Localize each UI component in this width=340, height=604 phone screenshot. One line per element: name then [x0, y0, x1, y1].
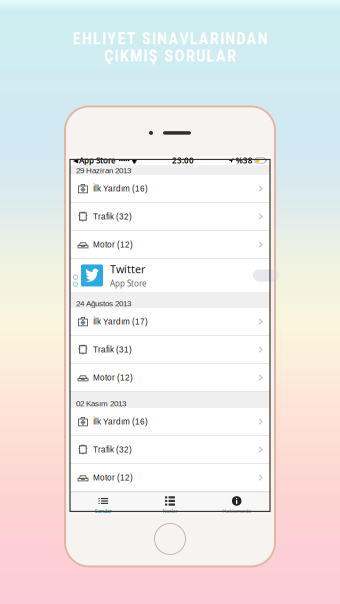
- staticText: L: [206, 46, 214, 65]
- staticText: Hakkımızda: [222, 507, 251, 514]
- staticText: R: [227, 46, 236, 65]
- staticText: App Store: [79, 155, 116, 166]
- staticText: 02 Kasım 2013: [76, 399, 126, 408]
- button[interactable]: İlk Yardım (16): [70, 175, 270, 203]
- button[interactable]: Hakkımızda: [203, 492, 270, 515]
- button[interactable]: Notlar: [137, 492, 203, 515]
- staticText: V: [179, 29, 188, 48]
- staticText: İlk Yardım (16): [93, 417, 148, 426]
- staticText: I: [152, 29, 156, 48]
- button[interactable]: Trafik (32): [70, 203, 270, 231]
- staticText: App Store: [110, 278, 147, 289]
- button[interactable]: Twitter: [70, 259, 270, 292]
- staticText: H: [82, 29, 92, 48]
- staticText: N: [225, 29, 235, 48]
- staticText: İlk Yardım (17): [93, 317, 148, 326]
- staticText: 29 Haziran 2013: [76, 166, 131, 175]
- button[interactable]: Motor (12): [70, 464, 270, 492]
- staticText: Trafik (32): [93, 445, 132, 454]
- staticText: R: [186, 46, 195, 65]
- staticText: A: [199, 29, 209, 48]
- button[interactable]: Motor (12): [70, 231, 270, 259]
- staticText: Notlar: [162, 507, 177, 514]
- staticText: Ş: [149, 46, 158, 65]
- staticText: 24 Ağustos 2013: [76, 299, 131, 308]
- button[interactable]: Sorular: [70, 492, 137, 515]
- staticText: K: [120, 46, 129, 65]
- staticText: Motor (12): [93, 240, 133, 249]
- staticText: A: [216, 46, 226, 65]
- staticText: A: [246, 29, 256, 48]
- staticText: S: [164, 46, 173, 65]
- staticText: A: [168, 29, 178, 48]
- staticText: T: [126, 29, 135, 48]
- staticText: İlk Yardım (16): [93, 184, 148, 193]
- staticText: E: [117, 29, 125, 48]
- staticText: L: [93, 29, 101, 48]
- button[interactable]: Motor (12): [70, 364, 270, 392]
- staticText: Motor (12): [93, 473, 133, 482]
- staticText: ◀: [73, 157, 78, 164]
- button[interactable]: İlk Yardım (17): [70, 308, 270, 336]
- staticText: N: [257, 29, 267, 48]
- staticText: I: [102, 29, 106, 48]
- staticText: O: [174, 46, 184, 65]
- staticText: Sorular: [95, 507, 112, 514]
- staticText: N: [157, 29, 167, 48]
- staticText: D: [236, 29, 245, 48]
- staticText: M: [130, 46, 142, 65]
- staticText: %38: [236, 155, 253, 166]
- staticText: Twitter: [110, 262, 145, 276]
- staticText: U: [196, 46, 205, 65]
- staticText: E: [72, 29, 80, 48]
- staticText: L: [189, 29, 197, 48]
- staticText: I: [220, 29, 224, 48]
- staticText: Y: [107, 29, 116, 48]
- staticText: I: [114, 46, 118, 65]
- staticText: Motor (12): [93, 373, 133, 382]
- staticText: Trafik (32): [93, 212, 132, 221]
- staticText: Ç: [104, 46, 113, 65]
- button[interactable]: İlk Yardım (16): [70, 408, 270, 436]
- staticText: 23:00: [172, 155, 194, 166]
- staticText: S: [142, 29, 151, 48]
- button[interactable]: Trafik (31): [70, 336, 270, 364]
- staticText: Trafik (31): [93, 345, 132, 354]
- staticText: R: [210, 29, 219, 48]
- button[interactable]: Trafik (32): [70, 436, 270, 464]
- staticText: I: [143, 46, 147, 65]
